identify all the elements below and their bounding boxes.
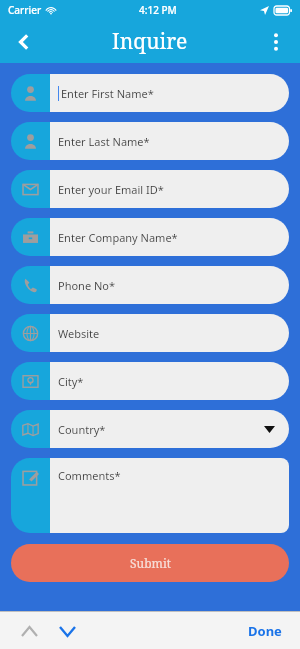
button[interactable]: Enter First Name* [11,74,289,112]
staticText: Enter your Email ID* [58,182,164,197]
button[interactable]: Country* [11,410,289,448]
staticText: Enter Company Name* [58,230,178,245]
staticText: Comments* [58,468,121,483]
staticText: Carrier [8,3,42,17]
button[interactable]: Previous field [14,616,44,646]
button[interactable]: Enter your Email ID* [11,170,289,208]
staticText: Enter First Name* [61,86,154,101]
staticText: Phone No* [58,278,116,293]
staticText: Enter Last Name* [58,134,150,149]
button[interactable]: Enter Company Name* [11,218,289,256]
staticText: Website [58,326,100,341]
staticText: 4:12 PM [139,3,177,17]
button[interactable]: Back [4,22,44,62]
button[interactable]: Website [11,314,289,352]
staticText: Done [248,622,282,640]
staticText: City* [58,374,84,389]
button[interactable]: Done [244,616,286,646]
button[interactable]: More options [256,22,296,62]
staticText: Country* [58,422,106,437]
button[interactable]: Comments* [11,458,289,533]
button[interactable]: Phone No* [11,266,289,304]
button[interactable]: Enter Last Name* [11,122,289,160]
staticText: Submit [130,555,171,571]
button[interactable]: Submit [11,544,289,582]
button[interactable]: City* [11,362,289,400]
button[interactable]: Next field [52,616,82,646]
staticText: Inquire [112,27,188,56]
